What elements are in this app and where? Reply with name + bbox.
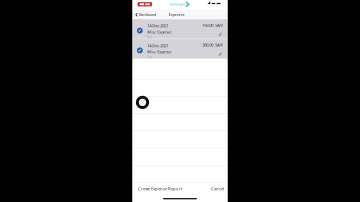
staticText: Test [147,35,152,39]
button[interactable]: 14-Dec-2021 [132,20,227,39]
staticText: 150.00 SAR [202,22,222,28]
staticText: Expenses [169,12,185,17]
staticText: Misc Expense [147,29,171,35]
button[interactable]: 14-Dec-2021 [132,40,227,59]
button[interactable]: Create Expense Report [132,183,185,194]
staticText: Create Expense Report [138,186,182,191]
staticText: 14-Dec-2021 [147,23,168,28]
staticText: 300.00 SAR [202,42,222,48]
staticText: Cancel [211,186,224,191]
button[interactable]: Dashboard [132,9,158,20]
staticText: trueangle [170,2,185,6]
staticText: Dashboard [139,12,156,17]
button[interactable]: Cancel [208,183,227,194]
staticText: Misc Expense [147,49,171,54]
staticText: 14-Dec-2021 [147,43,168,48]
staticText: Test [147,55,152,59]
